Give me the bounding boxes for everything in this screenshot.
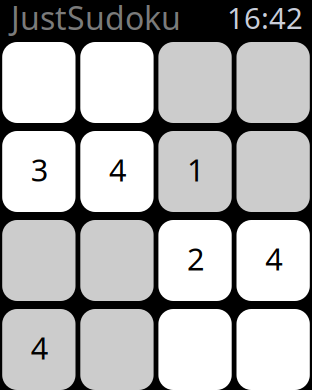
- staticText: 4: [109, 149, 127, 190]
- button[interactable]: Cell row 2 column 1, 3: [2, 131, 75, 212]
- button[interactable]: Empty cell row 1 column 2: [80, 42, 154, 123]
- button[interactable]: Cell row 2 column 3, 1: [158, 131, 232, 212]
- button[interactable]: Empty cell row 1 column 3: [158, 42, 232, 123]
- staticText: 4: [265, 238, 283, 279]
- staticText: 4: [31, 327, 49, 368]
- button[interactable]: Empty cell row 4 column 4: [236, 309, 310, 390]
- button[interactable]: Empty cell row 4 column 3: [158, 309, 232, 390]
- button[interactable]: Empty cell row 3 column 2: [80, 220, 154, 301]
- button[interactable]: Empty cell row 1 column 1: [2, 42, 75, 123]
- staticText: 16:42: [227, 0, 303, 37]
- button[interactable]: Cell row 3 column 4, 4: [236, 220, 310, 301]
- staticText: 1: [187, 149, 205, 190]
- button[interactable]: Empty cell row 1 column 4: [236, 42, 310, 123]
- button[interactable]: Empty cell row 4 column 2: [80, 309, 154, 390]
- staticText: 2: [187, 238, 205, 279]
- button[interactable]: Empty cell row 2 column 4: [236, 131, 310, 212]
- staticText: 3: [31, 149, 49, 190]
- button[interactable]: Empty cell row 3 column 1: [2, 220, 75, 301]
- button[interactable]: Cell row 2 column 2, 4: [80, 131, 154, 212]
- button[interactable]: Cell row 3 column 3, 2: [158, 220, 232, 301]
- button[interactable]: Cell row 4 column 1, 4: [2, 309, 75, 390]
- staticText: JustSudoku: [11, 0, 181, 39]
